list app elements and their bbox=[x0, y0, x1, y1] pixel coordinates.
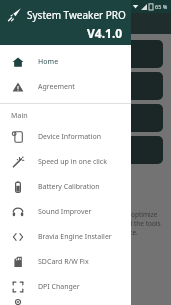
button[interactable]: Home bbox=[0, 49, 131, 74]
staticText: V4.1.0 bbox=[87, 25, 123, 41]
button[interactable]: Device Information bbox=[0, 124, 131, 149]
staticText: Battery Calibration bbox=[38, 182, 100, 192]
staticText: 65 % bbox=[155, 3, 168, 10]
staticText: SDCard R/W Fix bbox=[38, 257, 89, 267]
button[interactable] bbox=[0, 299, 131, 305]
staticText: Welcome to System Tweaker PRO! bbox=[10, 174, 124, 184]
button[interactable]: Agreement bbox=[0, 74, 131, 99]
staticText: Speed up in one click bbox=[38, 157, 107, 167]
button[interactable] bbox=[8, 104, 163, 132]
staticText: Device Information bbox=[38, 132, 102, 142]
button[interactable] bbox=[8, 72, 163, 100]
staticText: System Tweaker PRO bbox=[27, 8, 126, 22]
staticText: This application lets you customize and … bbox=[10, 210, 161, 237]
staticText: Bravia Engine Installer bbox=[38, 232, 112, 242]
button[interactable]: SDCard R/W Fix bbox=[0, 249, 131, 274]
button[interactable]: Sound Improver bbox=[0, 199, 131, 224]
button[interactable]: Bravia Engine Installer bbox=[0, 224, 131, 249]
button[interactable]: Speed up in one click bbox=[0, 149, 131, 174]
staticText: DPI Changer bbox=[38, 282, 80, 292]
staticText: Home bbox=[38, 57, 59, 67]
staticText: Sound Improver bbox=[38, 207, 92, 217]
staticText: Main bbox=[11, 111, 28, 121]
staticText: Agreement bbox=[38, 82, 75, 92]
button[interactable]: DPI Changer bbox=[0, 274, 131, 299]
button[interactable] bbox=[8, 40, 163, 68]
button[interactable] bbox=[8, 136, 163, 164]
button[interactable]: Battery Calibration bbox=[0, 174, 131, 199]
